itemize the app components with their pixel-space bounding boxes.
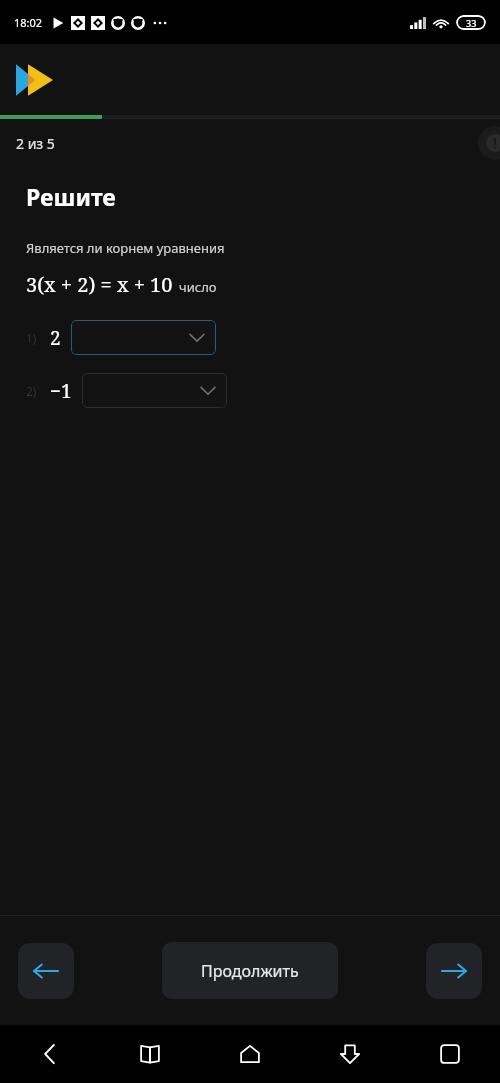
staticText: Является ли корнем уравнения: [26, 239, 225, 257]
staticText: −1: [50, 378, 72, 404]
staticText: 2): [26, 383, 37, 399]
button[interactable]: Информация: [478, 126, 500, 160]
staticText: число: [179, 278, 217, 296]
button[interactable]: Выберите ответ: [71, 320, 216, 355]
button[interactable]: Закладки: [124, 1028, 176, 1080]
button[interactable]: Вкладки: [424, 1028, 476, 1080]
staticText: Решите: [26, 181, 116, 212]
button[interactable]: Продолжить: [162, 942, 338, 999]
button[interactable]: Назад: [18, 943, 74, 999]
button[interactable]: Загрузки: [324, 1028, 376, 1080]
staticText: 2: [50, 325, 61, 351]
button[interactable]: Выберите ответ: [82, 373, 227, 408]
other: Logo: [16, 63, 62, 97]
button[interactable]: Назад: [24, 1028, 76, 1080]
button[interactable]: Вперёд: [426, 943, 482, 999]
staticText: 18:02: [14, 15, 43, 30]
staticText: Продолжить: [201, 960, 299, 982]
button[interactable]: Домой: [224, 1028, 276, 1080]
staticText: 2 из 5: [16, 134, 55, 153]
staticText: 33: [466, 17, 477, 29]
staticText: 1): [26, 330, 37, 346]
staticText: 3(x + 2) = x + 10: [26, 271, 173, 298]
